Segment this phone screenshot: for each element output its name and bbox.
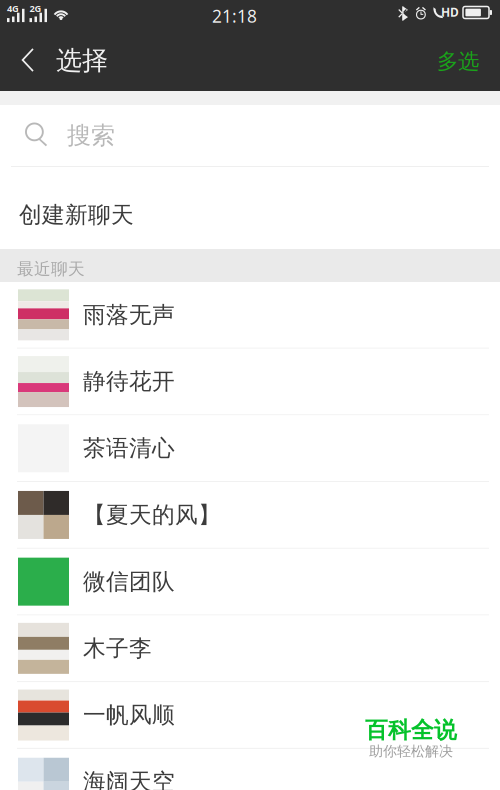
staticText: 海阔天空: [83, 767, 175, 790]
staticText: 静待花开: [83, 367, 175, 396]
staticText: 多选: [437, 48, 479, 75]
staticText: HD: [441, 4, 459, 20]
staticText: 选择: [56, 44, 108, 77]
button[interactable]: 【夏天的风】: [0, 482, 500, 549]
button[interactable]: 茶语清心: [0, 415, 500, 482]
button[interactable]: 微信团队: [0, 549, 500, 615]
staticText: 最近聊天: [17, 258, 85, 279]
button[interactable]: 海阔天空: [0, 749, 500, 790]
button[interactable]: 一帆风顺: [0, 682, 500, 749]
button[interactable]: 雨落无声: [0, 282, 500, 349]
staticText: 助你轻松解决: [369, 743, 453, 760]
button[interactable]: 搜索: [0, 105, 500, 167]
staticText: 【夏天的风】: [83, 501, 221, 529]
button[interactable]: 静待花开: [0, 349, 500, 415]
staticText: 百科全说: [365, 716, 457, 745]
staticText: 2G: [29, 2, 41, 15]
staticText: 21:18: [212, 4, 257, 28]
staticText: 一帆风顺: [83, 701, 175, 729]
staticText: 微信团队: [83, 567, 175, 596]
staticText: 茶语清心: [83, 434, 175, 463]
staticText: 4G: [7, 2, 19, 15]
button[interactable]: Back: [0, 32, 56, 91]
staticText: 木子李: [83, 634, 152, 663]
staticText: 雨落无声: [83, 301, 175, 329]
button[interactable]: 创建新聊天: [0, 167, 500, 249]
button[interactable]: 木子李: [0, 615, 500, 682]
staticText: 创建新聊天: [19, 201, 134, 229]
staticText: 搜索: [67, 120, 115, 151]
button[interactable]: 多选: [437, 32, 500, 91]
